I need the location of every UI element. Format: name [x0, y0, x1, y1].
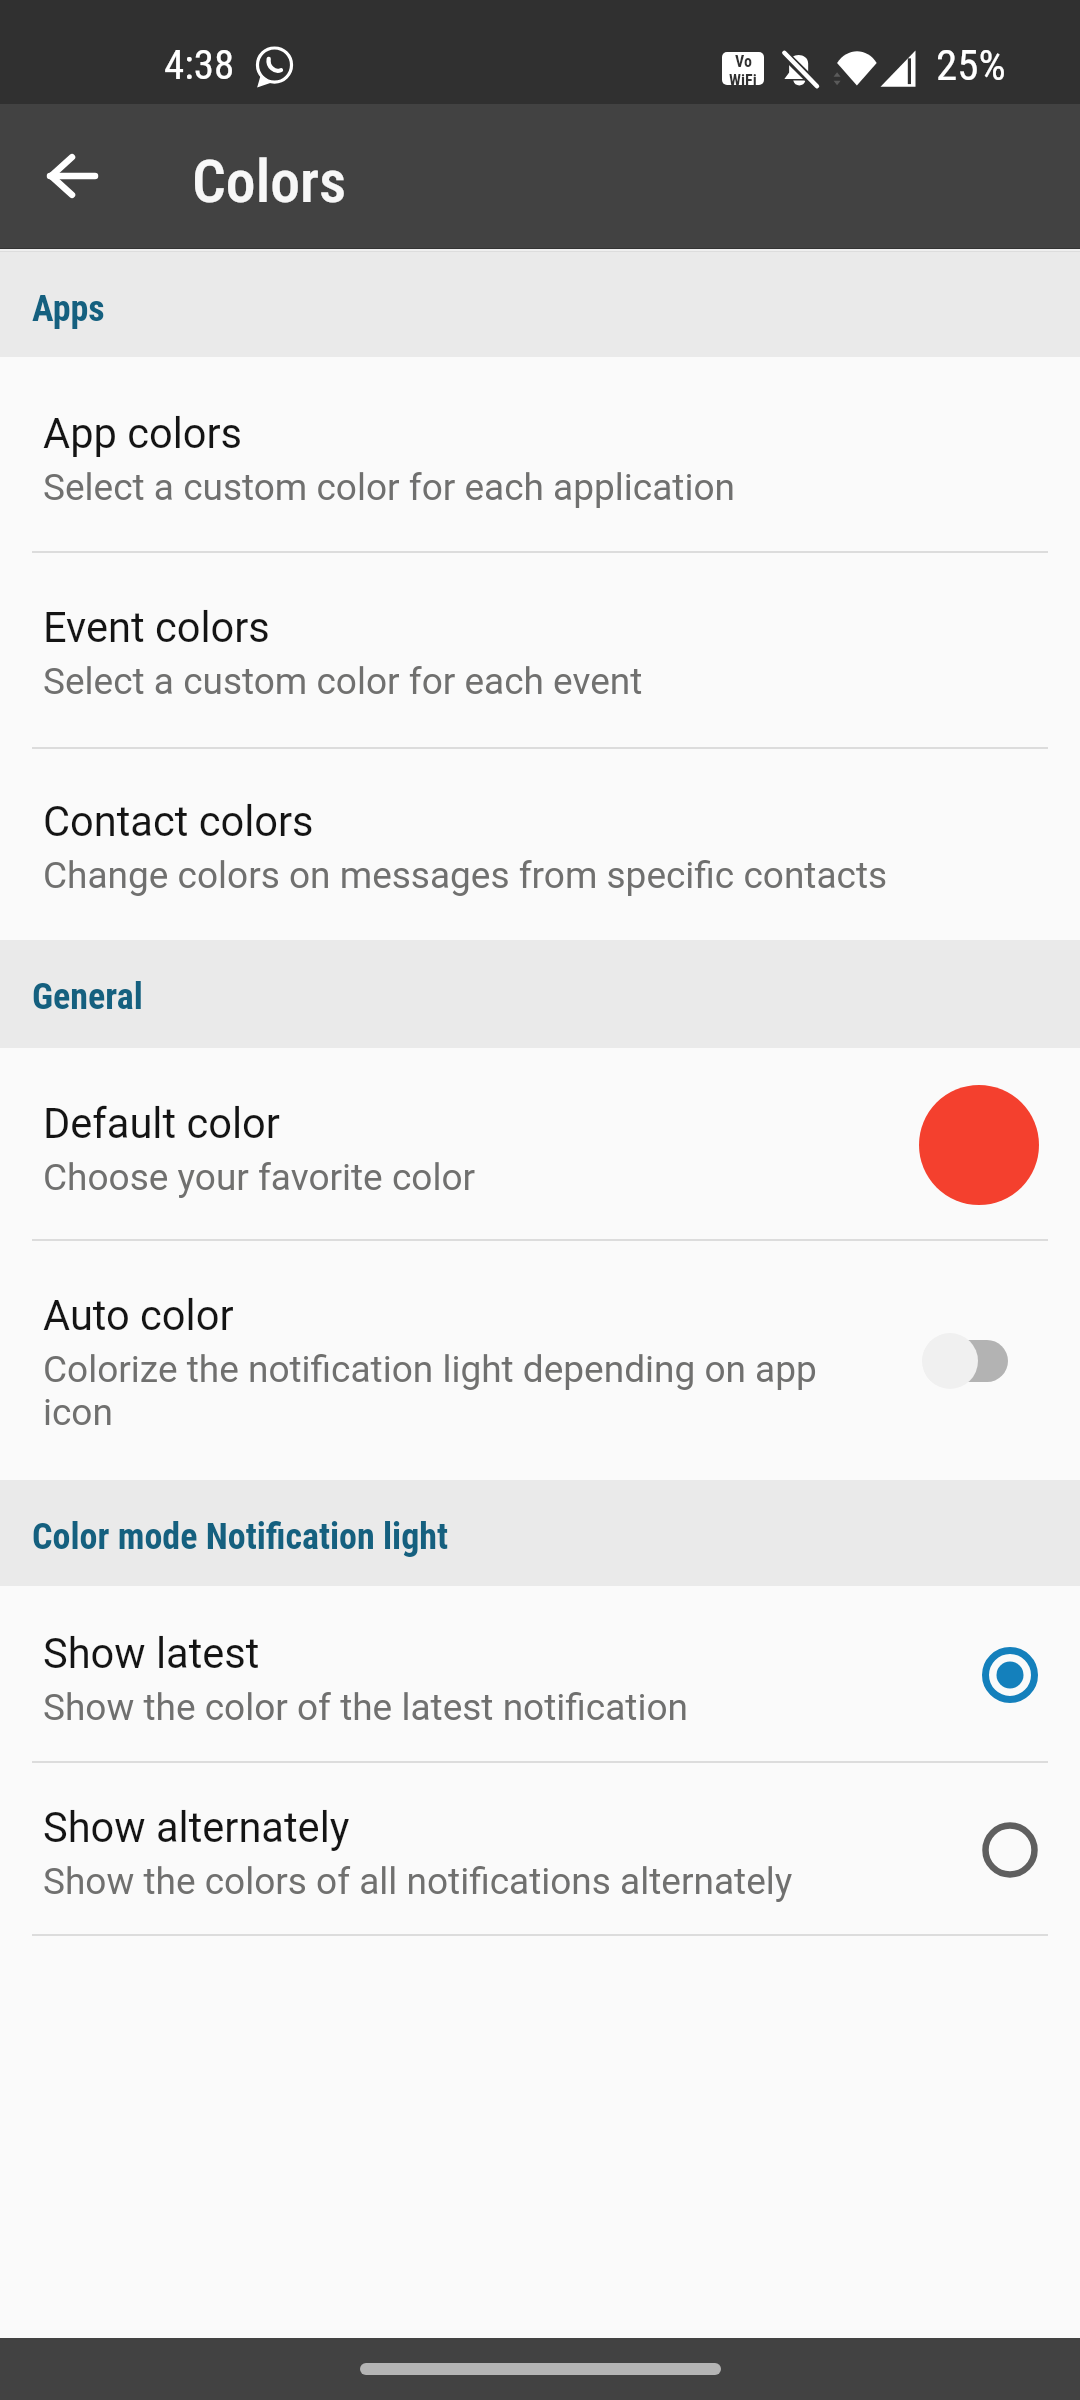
- button[interactable]: Show latest selected: [919, 1647, 1039, 1703]
- button[interactable]: Back: [0, 104, 144, 248]
- button[interactable]: Show alternately not selected: [919, 1822, 1039, 1878]
- staticText: Apps: [32, 288, 105, 330]
- button[interactable]: Pick default color: [919, 1085, 1039, 1205]
- staticText: Choose your favorite color: [43, 1156, 476, 1199]
- button[interactable]: App colors: [0, 357, 1080, 553]
- button[interactable]: Contact colors: [0, 749, 1080, 940]
- button[interactable]: Show latest: [0, 1586, 1080, 1763]
- staticText: Default color: [43, 1099, 280, 1148]
- staticText: Show alternately: [43, 1803, 350, 1852]
- button[interactable]: Show alternately: [0, 1763, 1080, 1936]
- button[interactable]: Event colors: [0, 553, 1080, 749]
- staticText: Show the color of the latest notificatio…: [43, 1686, 688, 1729]
- staticText: Contact colors: [43, 797, 314, 846]
- staticText: Select a custom color for each event: [43, 660, 643, 703]
- staticText: Colorize the notification light dependin…: [43, 1348, 883, 1434]
- button[interactable]: Auto color off: [919, 1330, 1039, 1392]
- staticText: Colors: [192, 147, 347, 217]
- staticText: Show the colors of all notifications alt…: [43, 1860, 793, 1903]
- staticText: WiFi: [729, 71, 757, 85]
- staticText: 25%: [936, 40, 1006, 90]
- button[interactable]: Auto color: [0, 1241, 1080, 1480]
- button[interactable]: Default color: [0, 1048, 1080, 1241]
- staticText: Event colors: [43, 603, 270, 652]
- staticText: General: [32, 976, 143, 1018]
- staticText: App colors: [43, 409, 243, 458]
- staticText: Auto color: [43, 1291, 234, 1340]
- staticText: 4:38: [164, 41, 235, 89]
- staticText: Change colors on messages from specific …: [43, 854, 888, 897]
- staticText: Vo: [735, 52, 752, 71]
- staticText: Color mode Notification light: [32, 1516, 449, 1558]
- staticText: Show latest: [43, 1629, 260, 1678]
- staticText: Select a custom color for each applicati…: [43, 466, 735, 509]
